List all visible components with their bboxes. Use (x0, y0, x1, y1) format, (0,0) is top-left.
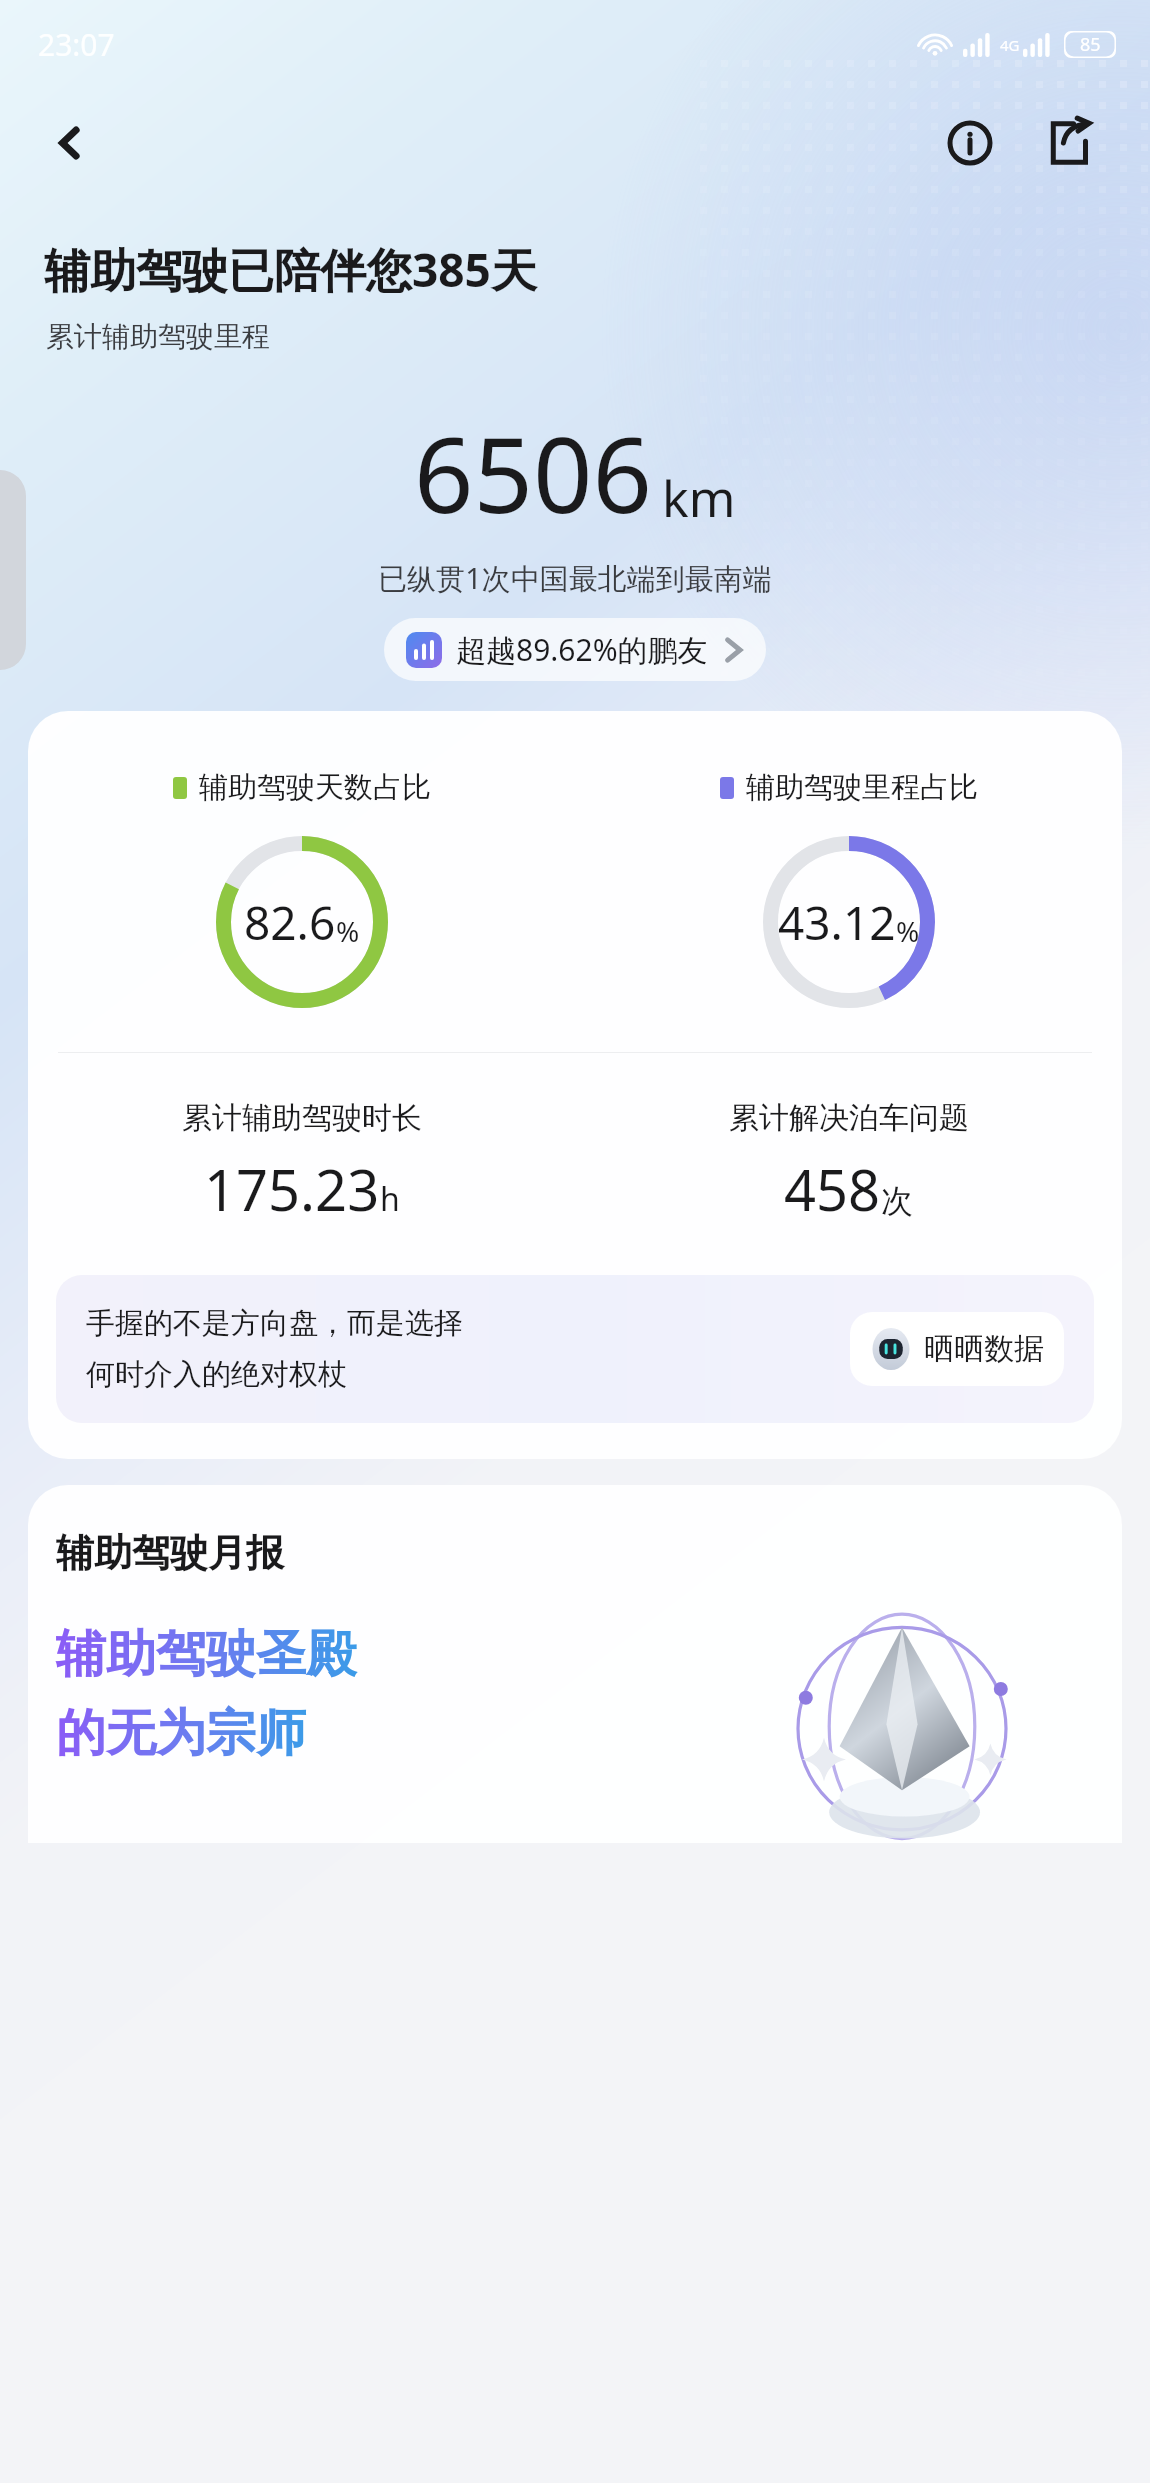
staticText: 手握的不是方向盘，而是选择 (86, 1305, 463, 1342)
staticText: 辅助驾驶圣殿 (56, 1623, 356, 1686)
staticText: % (896, 912, 920, 950)
staticText: 辅助驾驶里程占比 (746, 769, 978, 806)
staticText: 累计解决泊车问题 (729, 1099, 969, 1137)
button[interactable]: Back (34, 107, 106, 179)
button[interactable]: 晒晒数据 (850, 1312, 1064, 1386)
staticText: 次 (881, 1181, 913, 1221)
button[interactable]: 超越89.62%的鹏友 (384, 618, 766, 681)
staticText: 43.12 (778, 891, 896, 954)
staticText: 85 (1080, 32, 1101, 57)
button[interactable]: Info (930, 103, 1010, 183)
staticText: 23:07 (38, 24, 115, 65)
staticText: 辅助驾驶已陪伴您385天 (44, 238, 537, 301)
staticText: 辅助驾驶天数占比 (199, 769, 431, 806)
staticText: 超越89.62%的鹏友 (456, 629, 708, 670)
button[interactable]: Share (1028, 103, 1108, 183)
staticText: 已纵贯1次中国最北端到最南端 (0, 558, 1150, 598)
staticText: 175.23 (204, 1151, 380, 1227)
staticText: 晒晒数据 (924, 1330, 1044, 1368)
staticText: 的无为宗师 (56, 1702, 306, 1765)
staticText: 4G (1000, 35, 1020, 55)
staticText: % (336, 912, 360, 950)
staticText: km (662, 464, 736, 532)
staticText: 何时介入的绝对权杖 (86, 1356, 347, 1393)
staticText: 累计辅助驾驶时长 (182, 1099, 422, 1137)
staticText: h (380, 1177, 400, 1221)
staticText: 辅助驾驶月报 (56, 1529, 284, 1577)
staticText: 82.6 (244, 891, 336, 954)
staticText: 458 (784, 1151, 881, 1227)
staticText: 6506 (414, 402, 652, 544)
staticText: 累计辅助驾驶里程 (46, 319, 270, 354)
